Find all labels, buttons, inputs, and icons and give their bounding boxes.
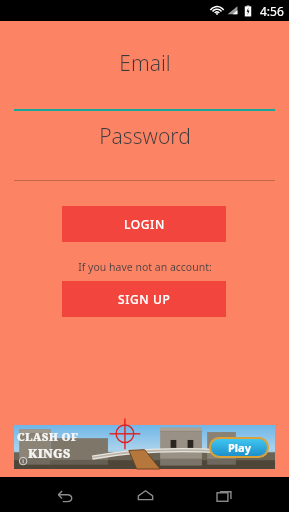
button[interactable]: Play bbox=[211, 439, 267, 456]
staticText: 4:56 bbox=[260, 3, 284, 19]
button[interactable]: Clash of Kings advertisement bbox=[14, 425, 275, 469]
button[interactable]: Recent apps bbox=[207, 478, 241, 512]
staticText: Password bbox=[99, 122, 191, 151]
staticText: KINGS bbox=[28, 445, 71, 461]
staticText: Email bbox=[119, 49, 171, 78]
button[interactable]: Email bbox=[0, 45, 289, 81]
button[interactable]: Password bbox=[0, 118, 289, 154]
staticText: Play bbox=[228, 440, 251, 455]
staticText: CLASH OF bbox=[17, 429, 79, 444]
staticText: LOGIN bbox=[124, 216, 165, 232]
button[interactable]: LOGIN bbox=[62, 206, 226, 242]
button[interactable]: SIGN UP bbox=[62, 281, 226, 317]
button[interactable]: Back bbox=[48, 478, 82, 512]
staticText: SIGN UP bbox=[118, 291, 171, 307]
staticText: If you have not an account: bbox=[78, 260, 212, 274]
button[interactable]: Home bbox=[128, 478, 162, 512]
